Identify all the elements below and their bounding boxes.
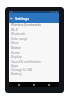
button[interactable]: Wi-Fi	[9, 28, 59, 32]
staticText: Sound & notification	[11, 60, 41, 64]
button[interactable]: Recent apps	[44, 82, 54, 87]
button[interactable]: More	[9, 41, 59, 45]
staticText: Storage & USB	[11, 68, 33, 72]
button[interactable]: Data usage	[9, 37, 59, 41]
staticText: Wireless & networks	[11, 23, 42, 27]
button[interactable]: Home	[9, 51, 59, 55]
button[interactable]: Bluetooth	[9, 32, 59, 36]
button[interactable]: Device	[9, 46, 59, 50]
staticText: More	[11, 41, 19, 45]
button[interactable]: Back	[9, 13, 14, 23]
button[interactable]: Home	[29, 82, 39, 87]
staticText: Display	[11, 55, 22, 59]
button[interactable]: Battery	[9, 72, 59, 76]
staticText: Data usage	[11, 37, 28, 41]
staticText: Battery	[11, 72, 22, 76]
staticText: Wi-Fi	[11, 28, 19, 32]
button[interactable]: Apps	[9, 64, 59, 68]
button[interactable]: Sound & notification	[9, 60, 59, 64]
button[interactable]: Back	[14, 82, 24, 87]
button[interactable]: Display	[9, 55, 59, 59]
staticText: Bluetooth	[11, 32, 26, 36]
staticText: Apps	[11, 64, 19, 68]
staticText: Home	[11, 51, 20, 55]
staticText: Device	[11, 46, 21, 50]
staticText: Settings	[15, 16, 29, 21]
button[interactable]: Wireless & networks	[9, 23, 59, 27]
button[interactable]: Storage & USB	[9, 68, 59, 72]
